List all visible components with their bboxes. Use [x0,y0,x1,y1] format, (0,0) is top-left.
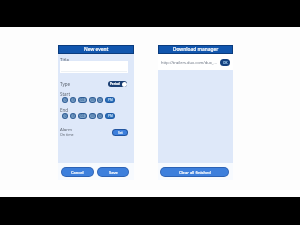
button[interactable]: http://trailers.dux.com/dux_... [158,54,233,70]
staticText: Title [60,57,69,63]
staticText: New event [84,46,109,53]
button[interactable]: Clear all finished [161,168,228,176]
button[interactable]: Set [113,130,127,135]
staticText: 09 [91,98,95,102]
button[interactable]: 30 [98,114,102,118]
staticText: Alarm [60,126,73,132]
staticText: Cancel [71,170,84,175]
button[interactable] [60,61,128,73]
staticText: Clear all finished [179,170,211,175]
button[interactable]: OK [220,59,230,66]
staticText: 15 [71,98,75,102]
button[interactable]: Cancel [62,168,93,176]
staticText: 30 [98,98,102,102]
staticText: Start [60,91,71,97]
staticText: http://trailers.dux.com/dux_... [161,60,217,65]
staticText: End [60,107,69,113]
button[interactable]: Save [98,168,128,176]
button[interactable]: 09 [90,114,95,118]
staticText: 10 [63,114,67,118]
staticText: PM [108,98,113,102]
staticText: 10 [63,98,67,102]
button[interactable]: New event [59,46,133,53]
button[interactable]: 09 [90,98,95,102]
button[interactable]: 30 [98,98,102,102]
button[interactable]: 10 [63,114,67,118]
staticText: 15 [71,114,75,118]
staticText: Period [110,82,120,86]
staticText: 2022 [79,114,86,118]
staticText: PM [108,114,113,118]
staticText: OK [223,61,228,65]
button[interactable]: 15 [71,114,75,118]
staticText: 30 [98,114,102,118]
button[interactable]: 2022 [79,114,86,118]
button[interactable]: Period [108,81,127,87]
staticText: 09 [91,114,95,118]
staticText: Set [118,131,123,135]
button[interactable]: 10 [63,98,67,102]
button[interactable]: Download manager [159,46,232,53]
staticText: Save [109,170,118,175]
staticText: Download manager [173,46,219,53]
staticText: Type [60,81,71,87]
staticText: 2022 [79,98,86,102]
button[interactable]: PM [106,98,114,102]
button[interactable]: 15 [71,98,75,102]
button[interactable]: PM [106,114,114,118]
staticText: On time [60,132,74,137]
button[interactable]: 2022 [79,98,86,102]
